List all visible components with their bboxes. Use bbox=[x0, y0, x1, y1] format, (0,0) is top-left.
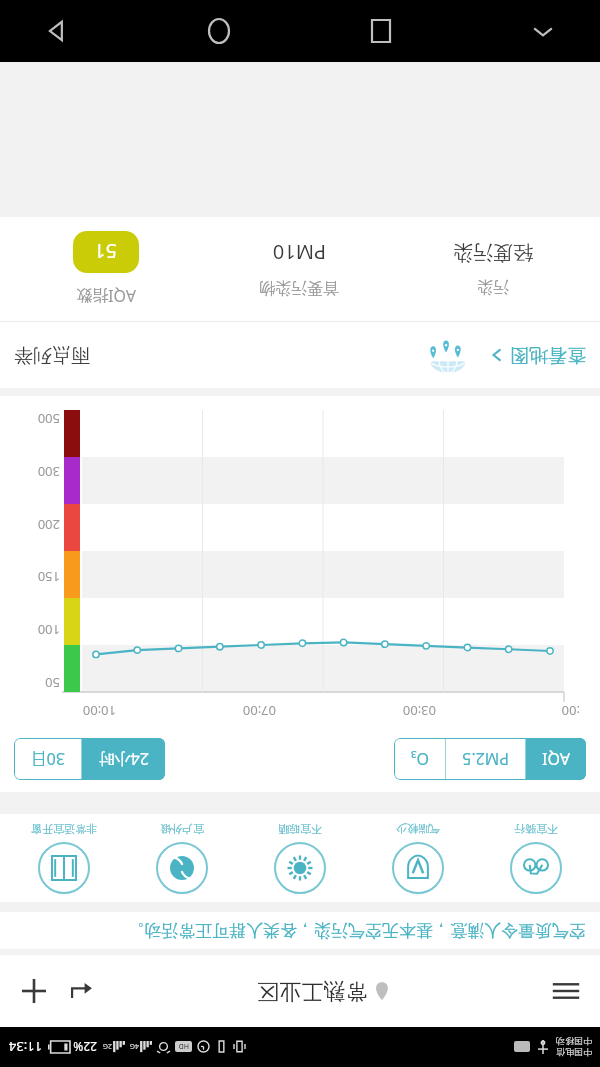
button[interactable]: 24小时 bbox=[82, 738, 165, 780]
button[interactable]: Menu bbox=[542, 967, 590, 1015]
staticText: 11:34 bbox=[8, 1038, 42, 1056]
button[interactable]: O₃ bbox=[394, 738, 445, 780]
staticText: PM10 bbox=[272, 239, 326, 266]
staticText: 500 bbox=[37, 410, 60, 428]
staticText: 气喘較少 bbox=[396, 822, 440, 836]
staticText: 07:00 bbox=[242, 702, 276, 720]
staticText: 中国电信 bbox=[556, 1047, 592, 1058]
staticText: 中国移动 bbox=[556, 1036, 592, 1047]
button[interactable]: 不宜晾晒 bbox=[246, 820, 354, 896]
staticText: 轻度污染 bbox=[453, 240, 533, 265]
staticText: 24小时 bbox=[98, 748, 149, 770]
button[interactable]: 气喘較少 bbox=[364, 820, 472, 896]
staticText: :00 bbox=[561, 702, 580, 720]
staticText: 03:00 bbox=[402, 702, 436, 720]
staticText: 常熟工业区 bbox=[257, 977, 367, 1005]
staticText: 10:00 bbox=[82, 702, 116, 720]
staticText: 50 bbox=[45, 674, 60, 692]
button[interactable]: Collapse bbox=[516, 4, 570, 58]
button[interactable]: Add bbox=[10, 967, 58, 1015]
staticText: 不宜骑行 bbox=[514, 822, 558, 836]
button[interactable]: AQI指数 bbox=[10, 231, 203, 307]
button[interactable]: 查看地图 bbox=[0, 322, 600, 388]
staticText: 300 bbox=[37, 463, 60, 481]
button[interactable]: Home bbox=[192, 4, 246, 58]
staticText: 非常适宜开窗 bbox=[31, 822, 97, 836]
staticText: 51 bbox=[94, 238, 117, 265]
button[interactable]: 宜户外锻 bbox=[128, 820, 236, 896]
staticText: 2G bbox=[102, 1041, 112, 1051]
staticText: 不宜晾晒 bbox=[278, 822, 322, 836]
staticText: AQI指数 bbox=[76, 285, 136, 307]
button[interactable]: 30日 bbox=[14, 738, 81, 780]
staticText: 雨点列举 bbox=[14, 343, 90, 367]
staticText: 查看地图 bbox=[510, 343, 586, 367]
staticText: 宜户外锻 bbox=[160, 822, 204, 836]
staticText: 150 bbox=[37, 568, 60, 586]
staticText: 30日 bbox=[30, 748, 65, 770]
staticText: HD bbox=[178, 1041, 189, 1051]
staticText: 22% bbox=[73, 1039, 97, 1055]
staticText: 空气质量令人满意，基本无空气污染，各类人群可正常活动。 bbox=[127, 920, 586, 941]
button[interactable]: PM2.5 bbox=[446, 738, 525, 780]
staticText: 污染 bbox=[477, 277, 509, 297]
staticText: 4G bbox=[129, 1041, 139, 1051]
staticText: AQI bbox=[542, 748, 570, 770]
button[interactable]: Back bbox=[30, 4, 84, 58]
button[interactable]: 首要污染物 bbox=[203, 239, 396, 298]
staticText: 首要污染物 bbox=[259, 278, 339, 298]
staticText: 100 bbox=[37, 621, 60, 639]
staticText: PM2.5 bbox=[462, 748, 509, 770]
button[interactable]: Refresh bbox=[58, 967, 106, 1015]
staticText: O₃ bbox=[410, 748, 429, 770]
button[interactable]: Recents bbox=[354, 4, 408, 58]
button[interactable]: AQI bbox=[526, 738, 586, 780]
button[interactable]: 污染 bbox=[396, 240, 590, 297]
staticText: 200 bbox=[37, 516, 60, 534]
button[interactable]: 不宜骑行 bbox=[482, 820, 590, 896]
button[interactable]: 非常适宜开窗 bbox=[10, 820, 118, 896]
